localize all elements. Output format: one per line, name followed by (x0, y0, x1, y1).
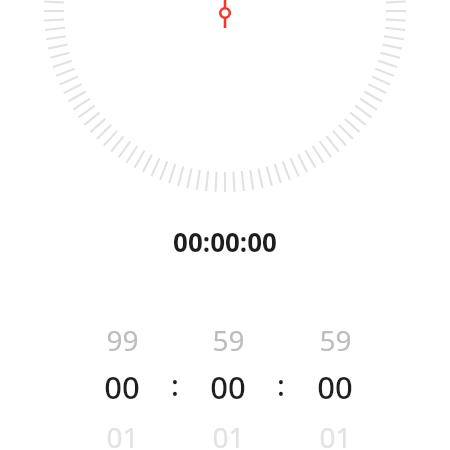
staticText: 01 (212, 418, 245, 450)
staticText: 59 (212, 321, 245, 359)
staticText: 00:00:00 (173, 224, 277, 259)
staticText: 99 (106, 321, 139, 359)
button[interactable] (292, 310, 378, 450)
staticText: 00 (317, 366, 353, 408)
button[interactable] (185, 310, 271, 450)
staticText: 00 (210, 366, 246, 408)
staticText: 59 (319, 321, 352, 359)
staticText: 00 (104, 366, 140, 408)
staticText: : (277, 365, 285, 404)
button[interactable] (79, 310, 165, 450)
staticText: : (171, 365, 179, 404)
staticText: 01 (106, 418, 139, 450)
staticText: 01 (319, 418, 352, 450)
other: Timer start marker (207, 0, 243, 32)
